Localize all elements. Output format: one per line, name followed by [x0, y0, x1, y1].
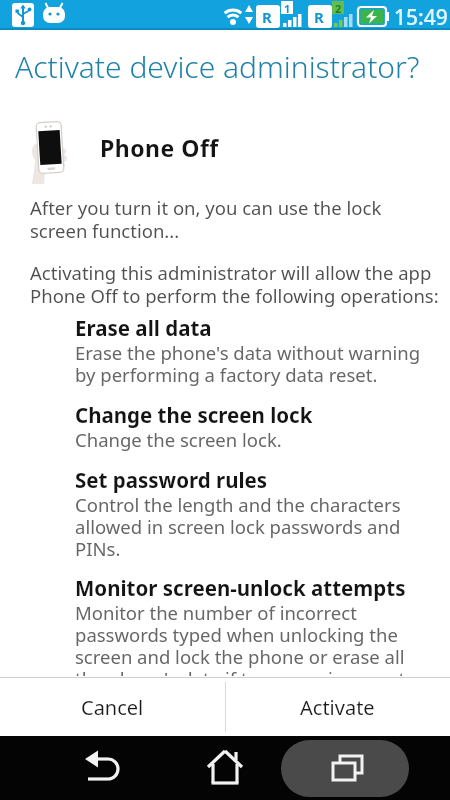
staticText: Cancel [81, 694, 144, 721]
staticText: Set password rules [75, 466, 268, 494]
staticText: Monitor screen-unlock attempts [75, 574, 406, 602]
staticText: R [314, 7, 324, 27]
staticText: After you turn it on, you can use the lo… [30, 195, 382, 243]
staticText: Control the length and the characters al… [75, 492, 401, 562]
staticText: 15:49 [394, 3, 448, 32]
button[interactable]: Cancel [0, 678, 225, 736]
staticText: Change the screen lock [75, 401, 313, 429]
staticText: Monitor the number of incorrect password… [75, 600, 406, 676]
staticText: Activate device administrator? [15, 46, 420, 87]
staticText: R [262, 7, 272, 27]
staticText: Change the screen lock. [75, 427, 282, 452]
staticText: Activating this administrator will allow… [30, 260, 439, 308]
staticText: 2 [335, 1, 342, 16]
button[interactable] [50, 738, 150, 798]
staticText: Phone Off [100, 132, 219, 163]
button[interactable]: Activate [225, 678, 450, 736]
button[interactable] [175, 738, 275, 798]
staticText: Erase all data [75, 314, 212, 342]
staticText: Erase the phone's data without warning b… [75, 340, 421, 388]
staticText: 1 [284, 1, 291, 16]
button[interactable] [281, 738, 409, 798]
staticText: Activate [300, 694, 375, 721]
